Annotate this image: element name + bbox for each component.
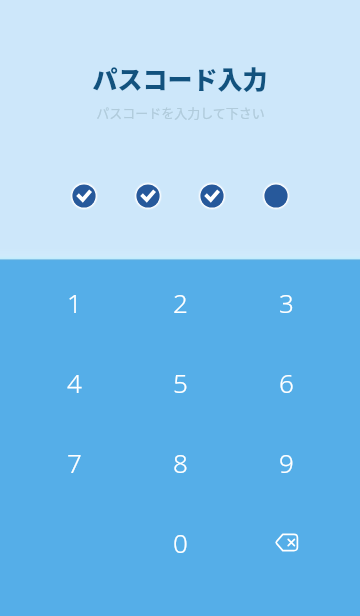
other: Passcode digit 2	[134, 182, 162, 210]
staticText: パスコードを入力して下さい	[96, 103, 265, 122]
staticText: 4	[67, 365, 82, 400]
staticText: 7	[67, 445, 82, 480]
staticText: 3	[279, 285, 294, 320]
button[interactable]: Delete	[242, 510, 330, 574]
button[interactable]: 2	[136, 270, 224, 334]
button[interactable]: 7	[30, 430, 118, 494]
button[interactable]: 5	[136, 350, 224, 414]
button[interactable]: 4	[30, 350, 118, 414]
staticText: 9	[279, 445, 294, 480]
button[interactable]: 8	[136, 430, 224, 494]
staticText: 5	[173, 365, 188, 400]
button[interactable]: 6	[242, 350, 330, 414]
other: Passcode digit 3	[198, 182, 226, 210]
staticText: 2	[173, 285, 188, 320]
button[interactable]: 1	[30, 270, 118, 334]
staticText: 6	[279, 365, 294, 400]
staticText: 0	[173, 525, 188, 560]
staticText: 8	[173, 445, 188, 480]
other: Passcode digit 1	[70, 182, 98, 210]
button[interactable]: 3	[242, 270, 330, 334]
staticText: 1	[67, 285, 82, 320]
staticText: パスコード入力	[92, 60, 268, 96]
button[interactable]: 9	[242, 430, 330, 494]
button[interactable]: 0	[136, 510, 224, 574]
other: Passcode digit 4	[262, 182, 290, 210]
